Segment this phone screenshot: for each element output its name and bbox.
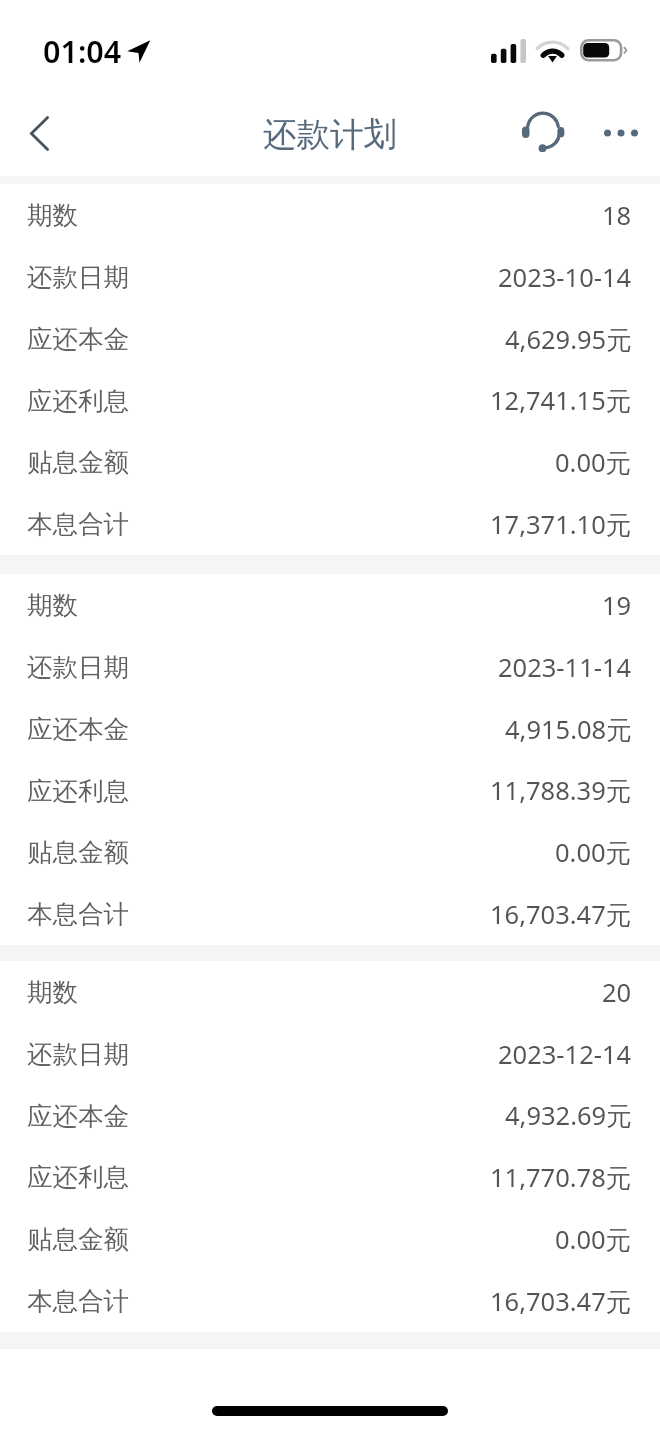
button[interactable]: 本息合计 — [0, 1270, 660, 1332]
button[interactable]: 还款日期 — [0, 636, 660, 698]
button[interactable]: 本息合计 — [0, 883, 660, 945]
staticText: 应还利息 — [27, 1161, 129, 1193]
staticText: 本息合计 — [27, 898, 129, 930]
staticText: 18 — [602, 198, 632, 233]
button[interactable]: 贴息金额 — [0, 821, 660, 883]
button[interactable]: Back — [0, 90, 78, 176]
staticText: 16,703.47元 — [490, 1284, 632, 1319]
button[interactable]: 期数 — [0, 574, 660, 636]
button[interactable]: 本息合计 — [0, 493, 660, 555]
staticText: 应还本金 — [27, 1100, 129, 1132]
staticText: 4,629.95元 — [505, 322, 632, 357]
button[interactable]: 应还利息 — [0, 370, 660, 431]
staticText: 4,915.08元 — [505, 712, 632, 747]
button[interactable]: 应还利息 — [0, 1146, 660, 1208]
staticText: 11,770.78元 — [490, 1160, 632, 1195]
staticText: 本息合计 — [27, 508, 129, 540]
button[interactable]: 贴息金额 — [0, 431, 660, 493]
staticText: 期数 — [27, 199, 78, 231]
staticText: 17,371.10元 — [490, 507, 632, 542]
staticText: 20 — [602, 975, 632, 1010]
button[interactable]: 还款日期 — [0, 246, 660, 308]
button[interactable]: 应还本金 — [0, 698, 660, 760]
button[interactable]: 应还本金 — [0, 1085, 660, 1146]
staticText: 0.00元 — [555, 1222, 632, 1257]
staticText: 2023-11-14 — [498, 650, 632, 685]
staticText: 应还利息 — [27, 775, 129, 807]
button[interactable]: More options — [582, 90, 660, 176]
staticText: 11,788.39元 — [490, 773, 632, 808]
staticText: 19 — [602, 588, 632, 623]
button[interactable]: 期数 — [0, 961, 660, 1023]
staticText: 01:04 — [43, 30, 122, 72]
staticText: 还款计划 — [263, 114, 397, 156]
staticText: 贴息金额 — [27, 836, 129, 868]
button[interactable]: 还款日期 — [0, 1023, 660, 1085]
button[interactable]: 贴息金额 — [0, 1208, 660, 1270]
staticText: 4,932.69元 — [505, 1098, 632, 1133]
staticText: 期数 — [27, 589, 78, 621]
staticText: 贴息金额 — [27, 1223, 129, 1255]
staticText: 0.00元 — [555, 445, 632, 480]
button[interactable]: 应还本金 — [0, 308, 660, 370]
staticText: 应还本金 — [27, 713, 129, 745]
button[interactable]: Customer service — [508, 90, 582, 176]
staticText: 本息合计 — [27, 1285, 129, 1317]
staticText: 12,741.15元 — [490, 383, 632, 418]
staticText: 贴息金额 — [27, 446, 129, 478]
staticText: 应还利息 — [27, 385, 129, 417]
staticText: 16,703.47元 — [490, 897, 632, 932]
staticText: 还款日期 — [27, 1038, 129, 1070]
staticText: 应还本金 — [27, 323, 129, 355]
button[interactable]: 应还利息 — [0, 760, 660, 821]
staticText: 还款日期 — [27, 651, 129, 683]
staticText: 0.00元 — [555, 835, 632, 870]
staticText: 还款日期 — [27, 261, 129, 293]
button[interactable]: 期数 — [0, 184, 660, 246]
staticText: 2023-12-14 — [498, 1037, 632, 1072]
staticText: 2023-10-14 — [498, 260, 632, 295]
staticText: 期数 — [27, 976, 78, 1008]
